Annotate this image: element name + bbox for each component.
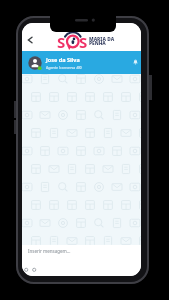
staticText: PENHA xyxy=(89,40,106,47)
button[interactable] xyxy=(23,33,35,47)
button[interactable]: Jose da Silva xyxy=(22,51,141,74)
staticText: S xyxy=(79,32,88,52)
staticText: MARIA DA xyxy=(89,36,115,43)
button[interactable]: S xyxy=(56,31,116,51)
staticText: Inserir mensagem... xyxy=(28,248,71,254)
staticText: Agente (conversa #8) xyxy=(46,65,82,70)
staticText: S xyxy=(57,32,66,52)
button[interactable]: Inserir mensagem... xyxy=(22,245,141,276)
button[interactable] xyxy=(132,59,139,66)
staticText: Jose da Silva xyxy=(46,56,80,63)
